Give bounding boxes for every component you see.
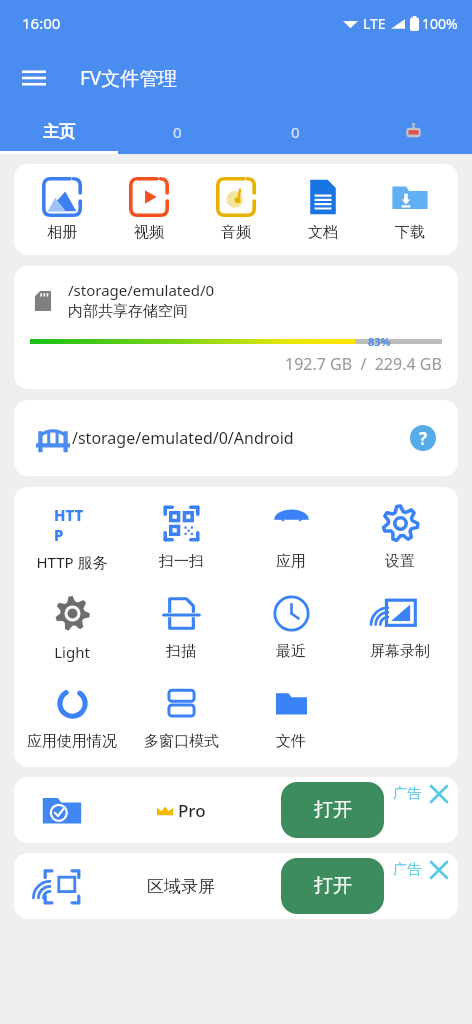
staticText: 广告 <box>393 861 421 879</box>
button[interactable]: /storage/emulated/0/Android <box>14 400 458 476</box>
staticText: Light <box>54 642 90 662</box>
staticText: 16:00 <box>22 13 61 33</box>
staticText: 主页 <box>43 122 75 142</box>
staticText: ? <box>419 427 428 450</box>
staticText: FV文件管理 <box>80 65 178 91</box>
staticText: LTE <box>363 14 386 33</box>
button[interactable]: Close ad <box>429 860 449 880</box>
button[interactable]: /storage/emulated/0 <box>14 266 458 389</box>
staticText: 文件 <box>276 732 306 751</box>
button[interactable]: 文档 <box>284 175 362 244</box>
button[interactable]: 0 <box>236 109 354 154</box>
button[interactable]: 下载 <box>371 175 449 244</box>
button[interactable]: 扫一扫 <box>129 501 233 573</box>
staticText: 应用 <box>276 552 306 571</box>
staticText: 设置 <box>385 552 415 571</box>
button[interactable]: 扫描 <box>129 591 233 663</box>
staticText: HTTP 服务 <box>36 552 108 572</box>
staticText: /storage/emulated/0/Android <box>72 427 294 449</box>
button[interactable]: 0 <box>118 109 236 154</box>
button[interactable]: 应用使用情况 <box>20 681 124 753</box>
button[interactable]: Robot tab <box>354 109 472 154</box>
staticText: 广告 <box>393 785 421 803</box>
staticText: 扫一扫 <box>159 552 204 571</box>
button[interactable]: 主页 <box>0 109 118 154</box>
staticText: 相册 <box>47 223 77 242</box>
staticText: 应用使用情况 <box>27 732 117 751</box>
button[interactable]: 文件 <box>239 681 343 753</box>
staticText: 视频 <box>134 223 164 242</box>
button[interactable]: 区域录屏 <box>14 853 458 919</box>
staticText: 83% <box>368 334 391 348</box>
button[interactable]: 打开 <box>281 858 384 914</box>
staticText: 打开 <box>314 874 352 898</box>
button[interactable]: 多窗口模式 <box>129 681 233 753</box>
button[interactable]: 打开 <box>281 782 384 838</box>
button[interactable]: 设置 <box>348 501 452 573</box>
staticText: 0 <box>173 122 182 142</box>
button[interactable]: 视频 <box>110 175 188 244</box>
button[interactable]: 音频 <box>197 175 275 244</box>
staticText: 屏幕录制 <box>370 642 430 661</box>
staticText: 内部共享存储空间 <box>68 302 188 321</box>
button[interactable]: 屏幕录制 <box>348 591 452 663</box>
staticText: 扫描 <box>166 642 196 661</box>
staticText: 音频 <box>221 223 251 242</box>
staticText: 多窗口模式 <box>144 732 219 751</box>
button[interactable]: Light <box>20 591 124 664</box>
staticText: HTTP <box>54 505 91 542</box>
staticText: 最近 <box>276 642 306 661</box>
button[interactable]: Pro <box>14 777 458 843</box>
button[interactable]: Help <box>410 425 436 451</box>
staticText: 区域录屏 <box>147 876 215 897</box>
staticText: /storage/emulated/0 <box>68 280 215 300</box>
button[interactable]: 相册 <box>23 175 101 244</box>
staticText: 192.7 GB / 229.4 GB <box>285 353 442 375</box>
staticText: Pro <box>178 799 206 822</box>
staticText: 0 <box>291 122 300 142</box>
button[interactable]: 应用 <box>239 501 343 573</box>
button[interactable]: 最近 <box>239 591 343 663</box>
button[interactable]: Close ad <box>429 784 449 804</box>
button[interactable]: Menu <box>12 56 56 100</box>
staticText: 100% <box>422 14 458 33</box>
staticText: 打开 <box>314 798 352 822</box>
staticText: 下载 <box>395 223 425 242</box>
button[interactable]: HTTP <box>20 501 124 574</box>
staticText: 文档 <box>308 223 338 242</box>
